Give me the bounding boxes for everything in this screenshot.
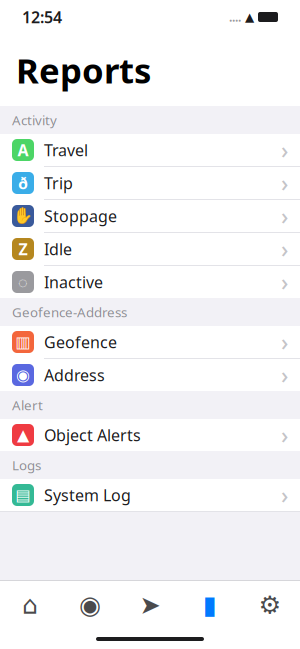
button[interactable]: Places [60,583,120,627]
staticText: Geofence-Address [12,303,127,321]
staticText: Stoppage [44,205,117,227]
staticText: › [281,168,288,198]
staticText: ⚙ [258,591,281,619]
button[interactable]: Settings [240,583,300,627]
staticText: ð [18,172,28,194]
staticText: 12:54 [22,6,62,28]
staticText: › [281,201,288,231]
staticText: A [17,139,28,161]
staticText: ◉ [79,591,101,619]
staticText: Address [44,364,105,386]
button[interactable]: Z [0,233,300,265]
button[interactable]: ð [0,167,300,199]
staticText: › [281,234,288,264]
staticText: › [281,480,288,510]
staticText: ⌂ [22,591,38,619]
staticText: ◉ [16,366,30,384]
staticText: › [281,135,288,165]
staticText: Activity [12,111,57,129]
staticText: System Log [44,484,131,506]
staticText: ▤ [15,486,30,504]
staticText: Logs [12,456,41,474]
staticText: Travel [44,139,88,161]
staticText: Geofence [44,331,117,353]
button[interactable]: ▤ [0,479,300,511]
staticText: › [281,420,288,450]
staticText: Z [18,238,27,260]
staticText: ▲ [245,10,254,24]
staticText: › [281,327,288,357]
button[interactable]: ✋ [0,200,300,232]
staticText: ▲ [17,426,29,444]
button[interactable]: Navigate [120,583,180,627]
staticText: ▥ [15,333,30,351]
button[interactable]: Home [0,583,60,627]
button[interactable]: ▥ [0,326,300,358]
staticText: Object Alerts [44,424,141,446]
staticText: Idle [44,238,72,260]
button[interactable]: Reports [180,583,240,627]
staticText: Trip [44,172,73,194]
staticText: Alert [12,396,43,414]
staticText: .... [229,9,241,25]
staticText: ▮ [203,591,217,619]
button[interactable]: A [0,134,300,166]
staticText: Reports [16,47,151,93]
staticText: ➤ [139,591,160,619]
staticText: Inactive [44,271,103,293]
staticText: › [281,267,288,297]
staticText: ◌ [18,271,28,293]
staticText: › [281,360,288,390]
button[interactable]: ◌ [0,266,300,298]
button[interactable]: ▲ [0,419,300,451]
staticText: ✋ [13,207,33,225]
button[interactable]: ◉ [0,359,300,391]
